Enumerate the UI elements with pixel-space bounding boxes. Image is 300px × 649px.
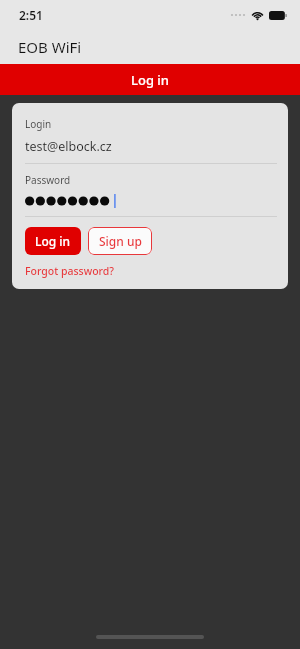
- button[interactable]: [25, 193, 277, 209]
- staticText: Sign up: [99, 233, 142, 249]
- button[interactable]: Sign up: [88, 227, 152, 255]
- staticText: test@elbock.cz: [25, 138, 112, 155]
- staticText: Forgot password?: [25, 264, 115, 278]
- button[interactable]: Log in: [0, 64, 300, 95]
- staticText: Password: [25, 173, 71, 187]
- staticText: Log in: [35, 233, 71, 249]
- staticText: EOB WiFi: [18, 37, 82, 57]
- staticText: 2:51: [19, 7, 43, 23]
- staticText: Log in: [131, 71, 169, 89]
- staticText: Login: [25, 117, 52, 131]
- button[interactable]: test@elbock.cz: [25, 138, 277, 155]
- button[interactable]: Forgot password?: [25, 264, 115, 278]
- button[interactable]: Log in: [25, 227, 81, 255]
